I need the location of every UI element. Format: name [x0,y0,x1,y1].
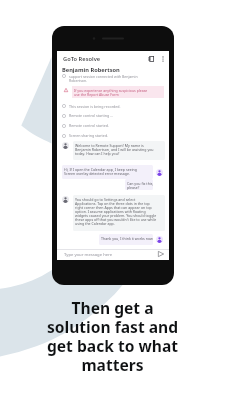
button[interactable]: You should go to Settings and select App… [73,195,165,231]
staticText: Then get a solution fast and get back to… [0,297,225,375]
staticText: Hi, If I open the Calendar app, I keep s… [64,167,137,177]
staticText: Type your message here [64,252,113,258]
staticText: Can you fix this, please? [127,181,153,190]
staticText: This session is being recorded. [69,104,121,109]
button[interactable]: Can you fix this, please? [125,179,153,190]
staticText: Screen sharing started. [69,133,109,138]
button[interactable]: Hi, If I open the Calendar app, I keep s… [62,165,153,179]
button[interactable]: Welcome to Remote Support! My name is Be… [73,141,165,160]
button[interactable]: Type your message here [57,249,169,260]
staticText: Benjamin Robertson [62,66,120,74]
staticText: Welcome to Remote Support! My name is Be… [75,143,154,157]
staticText: Remote control starting ... [69,113,113,118]
staticText: GoTo Resolve [63,55,101,63]
button[interactable]: More options [159,55,166,62]
button[interactable]: Send [157,250,164,257]
staticText: Remote control started. [69,123,109,128]
button[interactable]: GoTo Resolve [57,51,169,69]
button[interactable]: Sessions [147,55,154,62]
staticText: Thank you, I think it works now! [101,236,153,241]
staticText: You should go to Settings and select App… [75,197,157,227]
staticText: If you experience anything suspicious pl… [74,88,148,97]
staticText: support session connected with Benjamin … [69,74,138,83]
button[interactable]: Thank you, I think it works now! [99,234,153,245]
